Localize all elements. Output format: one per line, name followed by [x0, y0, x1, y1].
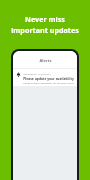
button[interactable]: Notification	[13, 69, 77, 86]
other: Notification	[16, 72, 21, 77]
staticText: Received on 10 Jan 2024	[23, 72, 51, 75]
staticText: Alerts	[39, 58, 52, 64]
button[interactable]: Alerts	[39, 58, 52, 64]
staticText: Please confirm availability for the next…	[23, 81, 74, 84]
staticText: Please update your availability	[23, 76, 74, 80]
staticText: important updates	[11, 25, 79, 35]
staticText: Never miss	[25, 14, 65, 24]
